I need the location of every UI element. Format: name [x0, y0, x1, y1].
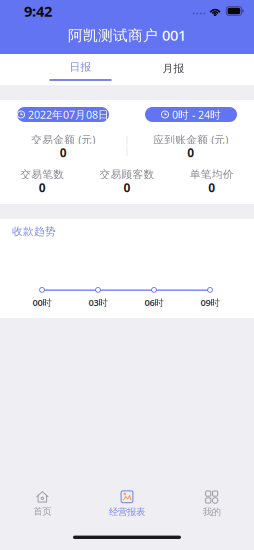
staticText: 日报: [69, 60, 91, 73]
staticText: 月报: [162, 62, 184, 75]
button[interactable]: 0时 - 24时: [145, 107, 237, 122]
staticText: 0: [123, 179, 130, 195]
staticText: 06时: [144, 296, 163, 309]
staticText: 应到账金额 (元): [153, 132, 228, 147]
staticText: 2022年07月08日: [28, 107, 109, 122]
button[interactable]: 日报: [34, 62, 127, 89]
staticText: 收款趋势: [12, 225, 56, 238]
staticText: 交易笔数: [20, 168, 64, 181]
staticText: 00时: [32, 296, 51, 309]
button[interactable]: 经营报表: [85, 480, 169, 528]
button[interactable]: 首页: [0, 480, 85, 528]
staticText: 0: [39, 179, 46, 195]
staticText: 09时: [200, 296, 219, 309]
button[interactable]: 我的: [169, 480, 254, 528]
staticText: 单笔均价: [190, 168, 234, 181]
staticText: 首页: [33, 506, 51, 517]
button[interactable]: 月报: [127, 62, 220, 89]
staticText: 经营报表: [109, 506, 145, 518]
staticText: 0: [208, 179, 215, 195]
staticText: 交易顾客数: [99, 168, 154, 181]
staticText: 0: [187, 144, 194, 160]
button[interactable]: 2022年07月08日: [17, 107, 109, 122]
staticText: 03时: [88, 296, 107, 309]
staticText: 0时 - 24时: [172, 107, 221, 122]
staticText: 交易金额 (元): [31, 132, 95, 147]
staticText: 我的: [203, 506, 221, 518]
staticText: 9:42: [24, 1, 52, 21]
staticText: 阿凯测试商户 001: [68, 25, 186, 45]
staticText: 0: [60, 144, 67, 160]
